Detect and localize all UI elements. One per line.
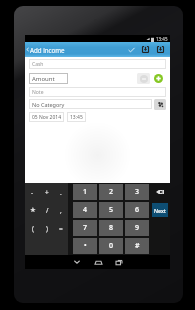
staticText: 13:45 [156, 36, 168, 42]
staticText: 1 [83, 187, 88, 197]
button[interactable]: 9 [125, 220, 149, 236]
button[interactable]: Navigate up [25, 42, 30, 57]
staticText: = [59, 224, 63, 233]
staticText: 0 [109, 241, 114, 251]
staticText: ( [32, 224, 34, 233]
button[interactable]: 0 [99, 238, 123, 254]
staticText: 9 [135, 223, 140, 233]
staticText: + [45, 188, 49, 197]
button[interactable]: 3 [125, 184, 149, 200]
staticText: Add income [30, 46, 65, 54]
button[interactable]: • [73, 238, 97, 254]
button[interactable]: 1 [73, 184, 97, 200]
button[interactable]: No Category [29, 99, 152, 109]
button[interactable]: . [54, 183, 68, 201]
button[interactable]: 2 [99, 184, 123, 200]
staticText: • [84, 241, 87, 251]
button[interactable]: 05 Nov 2014 [29, 112, 64, 122]
button[interactable]: 13:45 [67, 112, 86, 122]
button[interactable]: 4 [73, 202, 97, 218]
button[interactable]: 7 [73, 220, 97, 236]
button[interactable]: Cash [29, 59, 166, 69]
staticText: # [135, 241, 140, 251]
staticText: No Category [32, 101, 65, 108]
staticText: Next [154, 207, 166, 214]
button[interactable]: Decrease [137, 73, 150, 84]
staticText: 7 [83, 223, 88, 233]
staticText: 5 [109, 205, 114, 215]
staticText: ) [46, 224, 48, 233]
staticText: , [60, 206, 62, 215]
button[interactable]: Recent apps [112, 255, 126, 269]
button[interactable]: Note [29, 87, 166, 97]
button[interactable]: + [40, 183, 54, 201]
staticText: Amount [32, 75, 55, 83]
staticText: Note [32, 89, 44, 96]
staticText: 2 [109, 187, 114, 197]
button[interactable]: Amount [29, 73, 68, 84]
button[interactable]: Backspace [151, 185, 169, 199]
button[interactable]: 8 [99, 220, 123, 236]
button[interactable]: ( [25, 219, 40, 237]
staticText: 6 [135, 205, 140, 215]
button[interactable]: ★ [25, 201, 40, 219]
staticText: - [31, 188, 34, 197]
staticText: 05 Nov 2014 [32, 114, 62, 121]
button[interactable]: Next [152, 203, 168, 217]
button[interactable]: Save and create new [154, 42, 167, 57]
staticText: 3 [135, 187, 140, 197]
staticText: ★ [30, 206, 36, 214]
staticText: 13:45 [70, 114, 83, 121]
button[interactable]: # [125, 238, 149, 254]
button[interactable]: = [54, 219, 68, 237]
button[interactable]: 6 [125, 202, 149, 218]
staticText: / [46, 206, 49, 215]
button[interactable]: 5 [99, 202, 123, 218]
button[interactable]: ) [40, 219, 54, 237]
staticText: Cash [32, 61, 44, 68]
button[interactable]: Home [91, 255, 105, 269]
button[interactable]: - [25, 183, 40, 201]
button[interactable]: Save [139, 42, 152, 57]
staticText: 8 [109, 223, 114, 233]
staticText: . [60, 188, 62, 197]
button[interactable]: / [40, 201, 54, 219]
button[interactable]: , [54, 201, 68, 219]
staticText: 4 [83, 205, 88, 215]
button[interactable]: Back [70, 255, 84, 269]
button[interactable]: Increase [152, 73, 165, 84]
button[interactable]: Confirm [125, 42, 138, 57]
button[interactable]: Pick category [154, 99, 166, 110]
